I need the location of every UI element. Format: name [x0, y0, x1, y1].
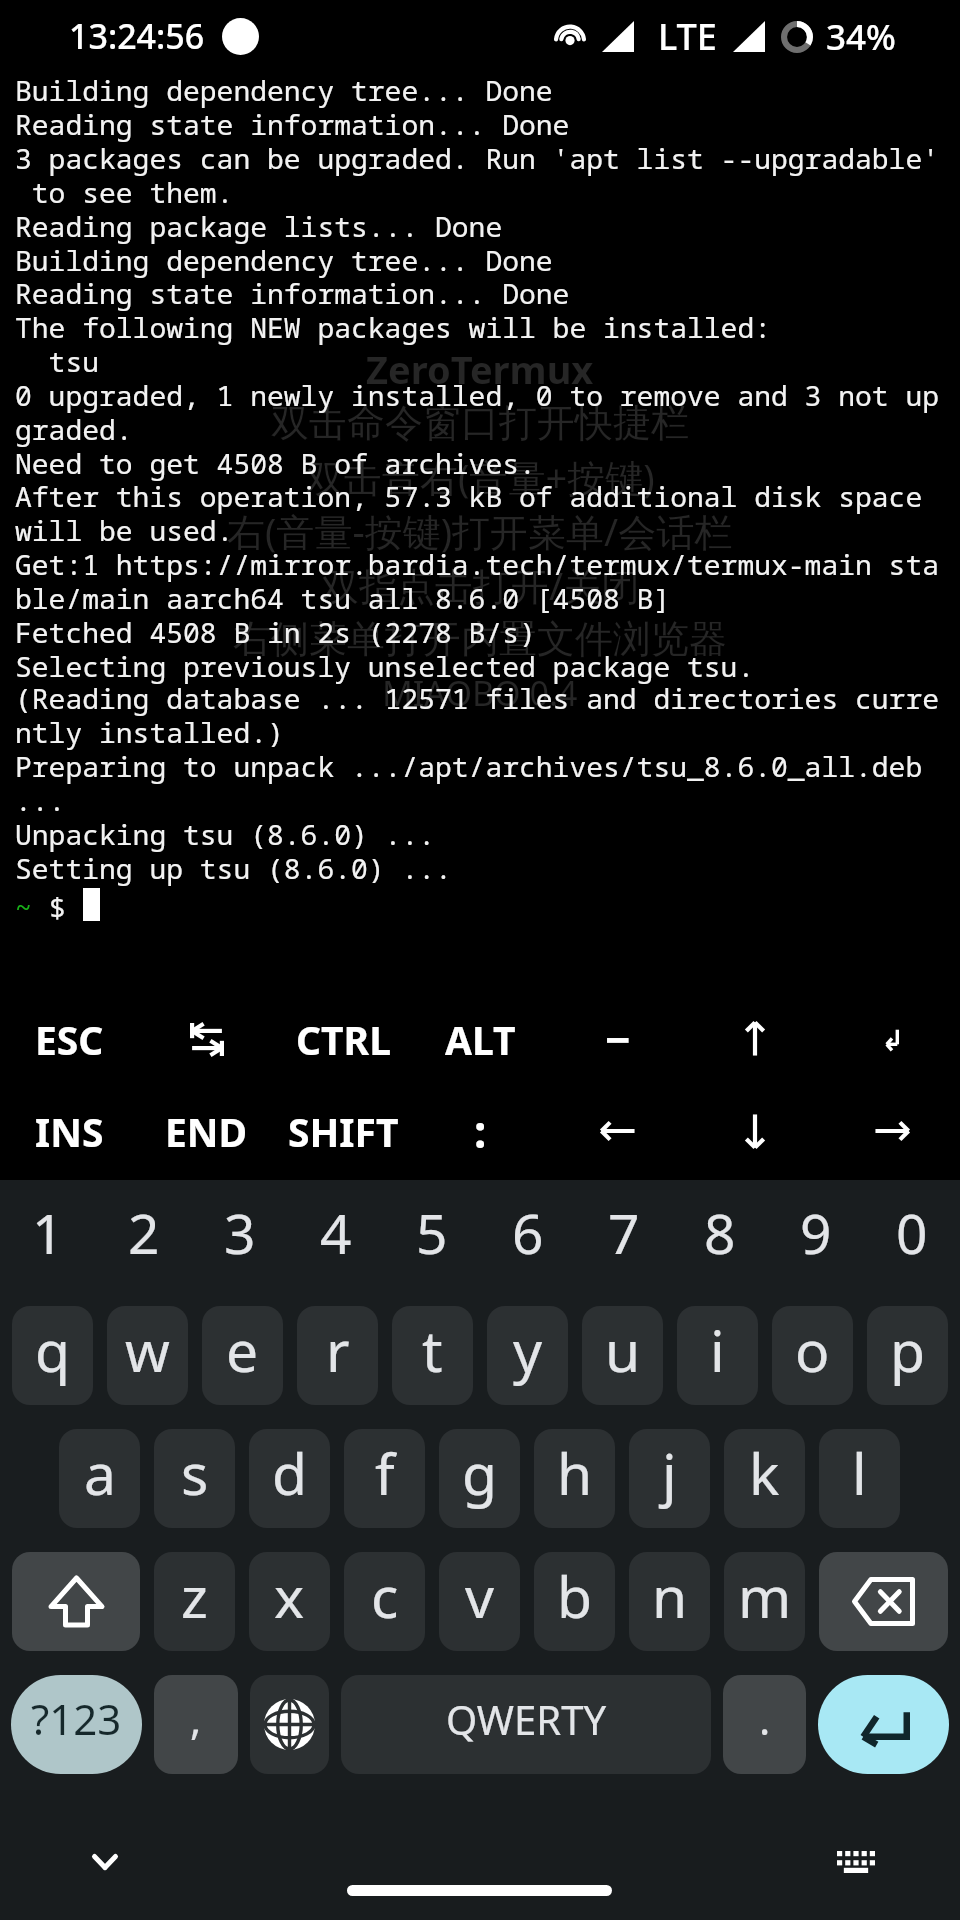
button[interactable]: Enter — [823, 993, 960, 1085]
button[interactable]: ?123 — [11, 1675, 142, 1774]
staticText: b — [557, 1557, 593, 1635]
button[interactable]: n — [629, 1552, 710, 1651]
button[interactable]: ALT — [412, 993, 549, 1085]
button[interactable]: r — [297, 1306, 378, 1405]
button[interactable]: CTRL — [275, 993, 412, 1085]
staticText: 3 — [224, 1195, 256, 1270]
staticText: . — [759, 1690, 771, 1747]
staticText: m — [738, 1557, 792, 1635]
button[interactable]: 2 — [96, 1180, 192, 1294]
button[interactable]: Hide keyboard — [65, 1822, 145, 1902]
button[interactable]: x — [249, 1552, 330, 1651]
staticText: o — [795, 1311, 830, 1389]
staticText: INS — [35, 1105, 104, 1158]
button[interactable]: Left — [549, 1085, 686, 1177]
staticText: g — [462, 1434, 498, 1512]
staticText: 2 — [128, 1195, 160, 1270]
staticText: After this operation, 57.3 kB of additio… — [15, 477, 940, 685]
button[interactable]: END — [138, 1085, 275, 1177]
button[interactable]: QWERTY — [341, 1675, 711, 1774]
button[interactable]: z — [154, 1552, 235, 1651]
button[interactable]: w — [107, 1306, 188, 1405]
button[interactable]: Shift — [12, 1552, 140, 1651]
staticText: 7 — [608, 1195, 640, 1270]
button[interactable]: l — [819, 1429, 900, 1528]
staticText: p — [890, 1311, 926, 1389]
staticText: ALT — [445, 1013, 516, 1066]
button[interactable]: p — [867, 1306, 948, 1405]
staticText: t — [422, 1311, 443, 1389]
button[interactable]: SHIFT — [275, 1085, 412, 1177]
button[interactable]: g — [439, 1429, 520, 1528]
button[interactable]: y — [487, 1306, 568, 1405]
button[interactable]: k — [724, 1429, 805, 1528]
staticText: ?123 — [31, 1690, 122, 1747]
button[interactable]: 5 — [384, 1180, 480, 1294]
button[interactable]: 0 — [864, 1180, 960, 1294]
button[interactable]: Switch input method — [816, 1822, 896, 1902]
button[interactable]: : — [412, 1085, 549, 1177]
button[interactable]: j — [629, 1429, 710, 1528]
button[interactable]: i — [677, 1306, 758, 1405]
staticText: w — [125, 1311, 170, 1389]
staticText: z — [181, 1557, 208, 1635]
staticText: x — [274, 1557, 305, 1635]
staticText: 双指点击打开/关闭 — [321, 559, 640, 611]
button[interactable]: d — [249, 1429, 330, 1528]
button[interactable]: . — [723, 1675, 806, 1774]
button[interactable]: f — [344, 1429, 425, 1528]
button[interactable]: − — [549, 993, 686, 1085]
button[interactable]: b — [534, 1552, 615, 1651]
staticText: d — [272, 1434, 308, 1512]
staticText: n — [652, 1557, 688, 1635]
button[interactable]: o — [772, 1306, 853, 1405]
staticText: QWERTY — [446, 1692, 607, 1746]
staticText: 右侧菜单打开内置文件浏览器 — [233, 615, 727, 663]
button[interactable]: Down — [686, 1085, 823, 1177]
button[interactable]: Right — [823, 1085, 960, 1177]
button[interactable]: 8 — [672, 1180, 768, 1294]
button[interactable]: 4 — [288, 1180, 384, 1294]
staticText: c — [371, 1557, 399, 1635]
button[interactable]: INS — [0, 1085, 138, 1177]
button[interactable]: , — [154, 1675, 238, 1774]
button[interactable]: u — [582, 1306, 663, 1405]
staticText: 双击命令窗口打开快捷栏 — [271, 399, 689, 447]
staticText: (Reading database ... 12571 files and di… — [15, 679, 940, 887]
button[interactable]: ESC — [0, 993, 138, 1085]
staticText: 双击音右(音量+按键) — [306, 451, 655, 503]
staticText: i — [710, 1311, 725, 1389]
button[interactable]: Change keyboard — [250, 1675, 329, 1774]
button[interactable]: h — [534, 1429, 615, 1528]
button[interactable]: 7 — [576, 1180, 672, 1294]
button[interactable]: m — [724, 1552, 805, 1651]
staticText: h — [557, 1434, 593, 1512]
button[interactable]: 1 — [0, 1180, 96, 1294]
button[interactable]: 6 — [480, 1180, 576, 1294]
staticText: s — [181, 1434, 209, 1512]
button[interactable]: q — [12, 1306, 93, 1405]
staticText: 6 — [512, 1195, 544, 1270]
button[interactable]: Tab — [138, 993, 275, 1085]
button[interactable]: 3 — [192, 1180, 288, 1294]
button[interactable]: Backspace — [819, 1552, 948, 1651]
staticText: 34% — [826, 13, 896, 61]
button[interactable]: Up — [686, 993, 823, 1085]
staticText: f — [375, 1434, 395, 1512]
staticText: SHIFT — [288, 1105, 399, 1158]
staticText: $ — [49, 888, 83, 926]
staticText: 13:24:56 — [69, 13, 205, 59]
button[interactable]: s — [154, 1429, 235, 1528]
button[interactable]: c — [344, 1552, 425, 1651]
button[interactable]: 9 — [768, 1180, 864, 1294]
button[interactable]: a — [59, 1429, 140, 1528]
button[interactable]: v — [439, 1552, 520, 1651]
button[interactable]: t — [392, 1306, 473, 1405]
staticText: CTRL — [296, 1013, 391, 1066]
staticText: q — [35, 1311, 71, 1389]
button[interactable]: e — [202, 1306, 283, 1405]
staticText: Reading state information... Done The fo… — [15, 274, 940, 482]
button[interactable]: Enter — [818, 1675, 949, 1774]
staticText: 1 — [32, 1195, 64, 1270]
staticText: a — [84, 1434, 116, 1512]
